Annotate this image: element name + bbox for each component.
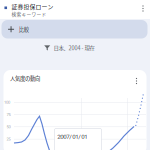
staticText: 50 <box>6 124 10 129</box>
button[interactable]: 比較 <box>1 20 147 38</box>
staticText: 検索キーワード <box>11 11 46 17</box>
button[interactable]: 日本、2004 - 現在 <box>44 44 94 52</box>
button[interactable]: More options <box>136 0 150 17</box>
staticText: 25 <box>6 137 10 141</box>
staticText: 人気度の動向 <box>10 74 40 82</box>
staticText: 75 <box>6 112 10 117</box>
staticText: 日本、2004 - 現在 <box>53 44 94 52</box>
staticText: 100 <box>4 100 10 105</box>
button[interactable]: Chart options <box>134 78 138 84</box>
staticText: 証券担保ローン <box>11 2 53 11</box>
staticText: 比較 <box>19 25 29 33</box>
staticText: 2007/01/01 <box>57 133 87 140</box>
